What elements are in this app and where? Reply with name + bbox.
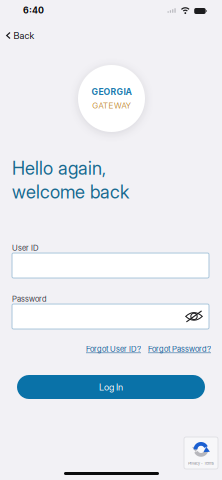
- button[interactable]: Back: [3, 28, 37, 43]
- staticText: welcome back: [12, 181, 129, 203]
- staticText: Password: [12, 294, 47, 304]
- button[interactable]: Log In: [17, 375, 205, 399]
- staticText: Privacy - Terms: [188, 461, 214, 466]
- staticText: GEORGIA: [91, 87, 131, 97]
- staticText: GATEWAY: [92, 101, 131, 110]
- staticText: 6:40: [23, 5, 44, 16]
- staticText: User ID: [12, 243, 39, 253]
- staticText: Forgot User ID?: [86, 344, 141, 354]
- button[interactable]: Forgot User ID?: [86, 344, 141, 354]
- staticText: Hello again,: [12, 157, 106, 179]
- button[interactable]: Forgot Password?: [148, 344, 211, 354]
- button[interactable]: Show password: [185, 310, 209, 323]
- staticText: Log In: [99, 381, 123, 393]
- staticText: Back: [13, 30, 34, 41]
- staticText: Forgot Password?: [148, 344, 211, 354]
